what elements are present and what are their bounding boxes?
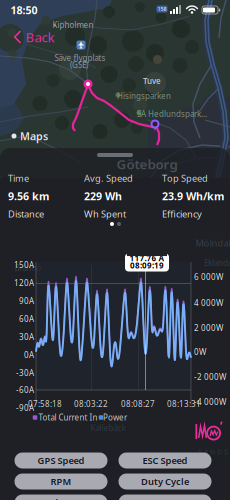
staticText: -90A [16,403,34,413]
button[interactable]: Duty Cycle [118,473,211,489]
staticText: 117.76 A [129,253,164,263]
staticText: Hisingsparken [117,91,171,101]
staticText: S A N D S [198,448,228,456]
staticText: 08:03:22 [74,399,108,409]
staticText: RPM [50,475,71,488]
staticText: Kipholmen [52,20,93,30]
staticText: Säve flygplats [54,53,105,63]
staticText: 4 000W [194,298,223,308]
button[interactable]: Motor Power [118,494,211,500]
staticText: 6 000W [194,272,223,282]
staticText: Maps [20,129,48,143]
button[interactable]: ESC Speed [118,452,211,468]
staticText: 30A [19,332,34,342]
staticText: 90A [19,296,34,306]
staticText: Total Current In [38,412,97,423]
staticText: Time [8,172,29,184]
staticText: 120A [14,278,34,288]
staticText: Voltage [43,496,78,500]
staticText: ESC Speed [142,454,187,467]
staticText: 150A [14,260,34,270]
staticText: Eklanda [204,258,230,268]
staticText: Top Speed [162,172,208,184]
staticText: 08:09:19 [130,260,164,271]
staticText: 18:50 [10,3,37,17]
staticText: 9.56 km [8,189,49,203]
staticText: Back [25,28,54,46]
staticText: 0W [194,347,206,357]
staticText: 229 Wh [84,189,122,203]
staticText: GPS Speed [37,454,84,467]
staticText: 08:13:31 [167,399,201,409]
staticText: -4 000W [194,397,226,407]
staticText: 158 [157,5,166,13]
button[interactable]: GPS Speed [14,452,107,468]
staticText: -2 000W [194,372,226,382]
staticText: 2 000W [194,323,223,333]
staticText: Duty Cycle [141,475,189,488]
staticText: Tuve [143,76,161,86]
staticText: Brännö [14,263,41,273]
staticText: SA Hedlundspark... [137,109,207,119]
staticText: Distance [8,208,44,220]
staticText: Göteborg [116,155,177,173]
button[interactable]: Back [13,29,54,45]
button[interactable]: Voltage [14,494,107,500]
staticText: 0A [24,350,34,360]
staticText: Efficiency [162,208,202,220]
staticText: -30A [16,368,34,378]
staticText: 08:08:27 [121,399,155,409]
staticText: 60A [19,314,34,324]
staticText: Wh Spent [84,208,126,220]
staticText: Kallebäck [90,423,125,433]
staticText: -60A [16,385,34,395]
staticText: 07:58:18 [28,399,62,409]
button[interactable]: RPM [14,473,107,489]
staticText: Avg. Speed [84,172,133,184]
staticText: Mölndal [195,237,230,249]
staticText: Power [103,412,127,423]
staticText: (GSE) [70,60,88,70]
staticText: 23.9 Wh/km [162,189,224,203]
